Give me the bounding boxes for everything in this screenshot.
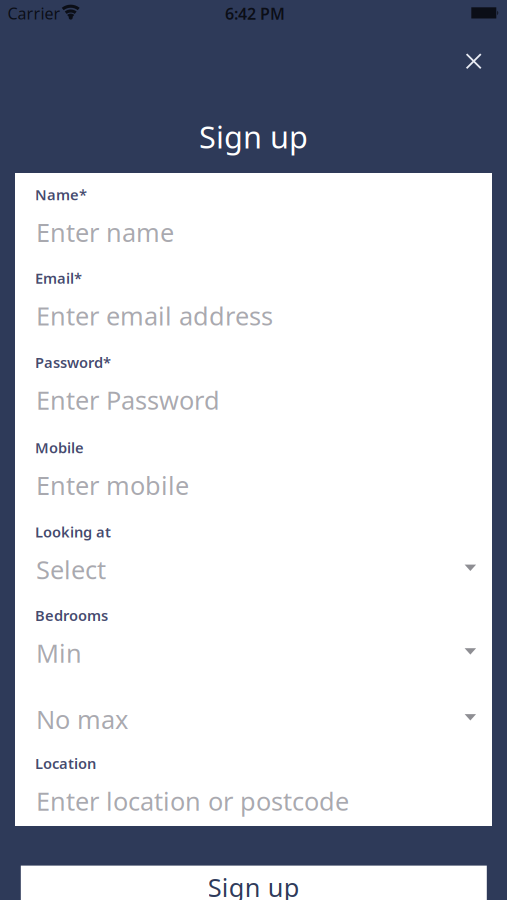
- staticText: Sign up: [208, 870, 300, 900]
- button[interactable]: Email*: [15, 268, 492, 346]
- button[interactable]: Close: [458, 45, 489, 77]
- staticText: Select: [36, 552, 106, 586]
- staticText: Sign up: [199, 116, 308, 157]
- button[interactable]: Mobile: [15, 438, 492, 516]
- staticText: 6:42 PM: [225, 3, 285, 24]
- staticText: Password*: [35, 352, 111, 372]
- staticText: Enter email address: [36, 299, 273, 332]
- staticText: Bedrooms: [35, 606, 108, 625]
- button[interactable]: Sign up: [21, 866, 487, 900]
- staticText: Enter location or postcode: [36, 784, 349, 818]
- staticText: Carrier: [7, 3, 60, 24]
- button[interactable]: Location: [15, 753, 492, 823]
- staticText: Location: [35, 753, 96, 773]
- staticText: No max: [36, 702, 128, 736]
- staticText: Looking at: [35, 522, 111, 541]
- staticText: Min: [36, 636, 82, 670]
- staticText: Mobile: [35, 438, 84, 457]
- staticText: Email*: [35, 268, 82, 288]
- staticText: Enter mobile: [36, 468, 189, 502]
- button[interactable]: Bedrooms: [15, 606, 492, 684]
- button[interactable]: Password*: [15, 352, 492, 430]
- staticText: Enter name: [36, 215, 174, 249]
- button[interactable]: No max: [15, 702, 492, 750]
- staticText: Enter Password: [36, 383, 220, 417]
- button[interactable]: Looking at: [15, 522, 492, 600]
- button[interactable]: Name*: [15, 185, 492, 263]
- staticText: Name*: [35, 185, 87, 204]
